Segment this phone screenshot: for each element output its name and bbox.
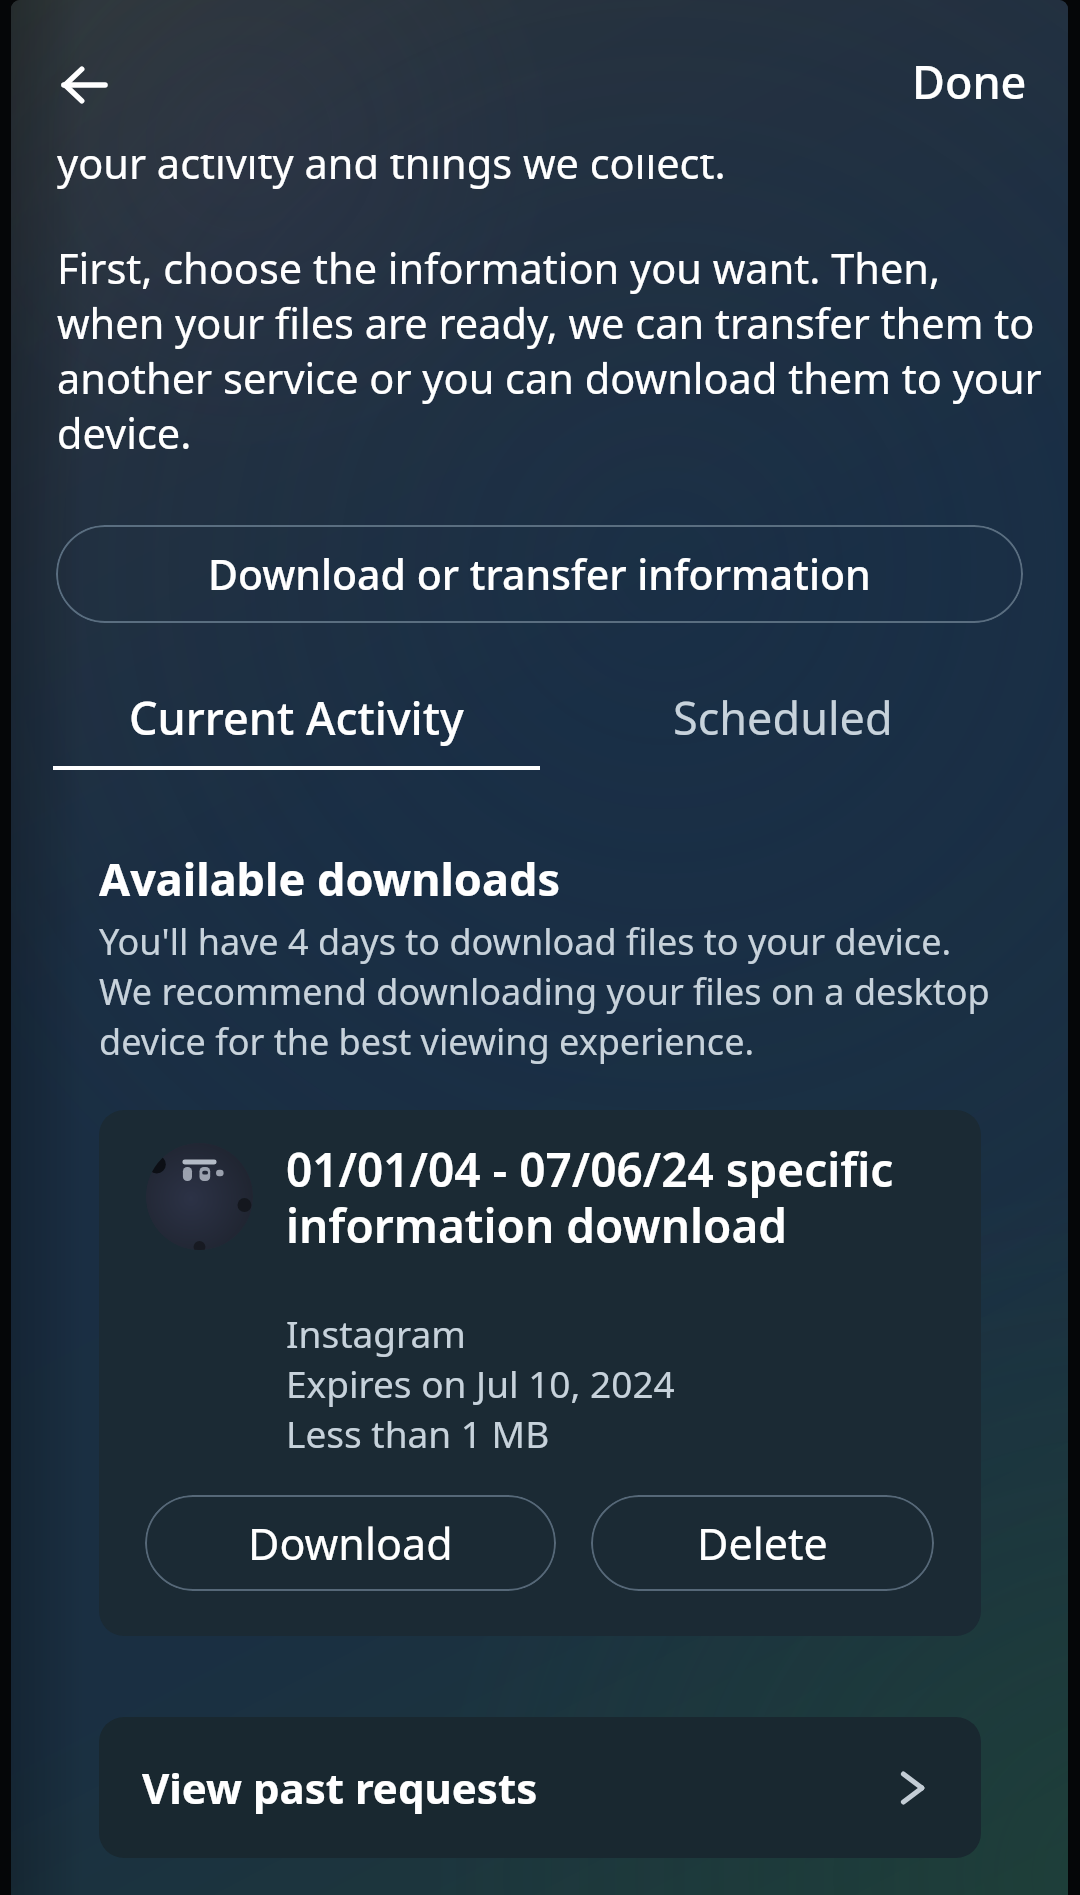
- staticText: 01/01/04 - 07/06/24 specific information…: [286, 1138, 981, 1256]
- staticText: your activity and things we collect.: [57, 135, 726, 192]
- staticText: Available downloads: [99, 848, 560, 909]
- button[interactable]: Back: [40, 41, 128, 129]
- button[interactable]: Download: [145, 1495, 556, 1591]
- button[interactable]: View past requests: [99, 1717, 981, 1858]
- other: Download preview: [146, 1143, 253, 1250]
- staticText: Done: [912, 51, 1027, 112]
- staticText: Less than 1 MB: [286, 1408, 550, 1458]
- button[interactable]: Done: [896, 45, 1043, 118]
- staticText: Download or transfer information: [208, 546, 871, 602]
- button[interactable]: Current Activity: [53, 687, 539, 808]
- staticText: Expires on Jul 10, 2024: [286, 1358, 675, 1408]
- staticText: First, choose the information you want. …: [57, 240, 1042, 461]
- staticText: Download: [248, 1514, 453, 1573]
- button[interactable]: Scheduled: [539, 687, 1026, 808]
- button[interactable]: Download or transfer information: [56, 525, 1023, 623]
- staticText: Instagram: [286, 1308, 466, 1358]
- button[interactable]: Delete: [591, 1495, 934, 1591]
- staticText: Current Activity: [129, 687, 464, 748]
- staticText: View past requests: [142, 1759, 538, 1816]
- staticText: Delete: [697, 1514, 828, 1573]
- staticText: Scheduled: [673, 687, 893, 748]
- staticText: You'll have 4 days to download files to …: [99, 917, 990, 1066]
